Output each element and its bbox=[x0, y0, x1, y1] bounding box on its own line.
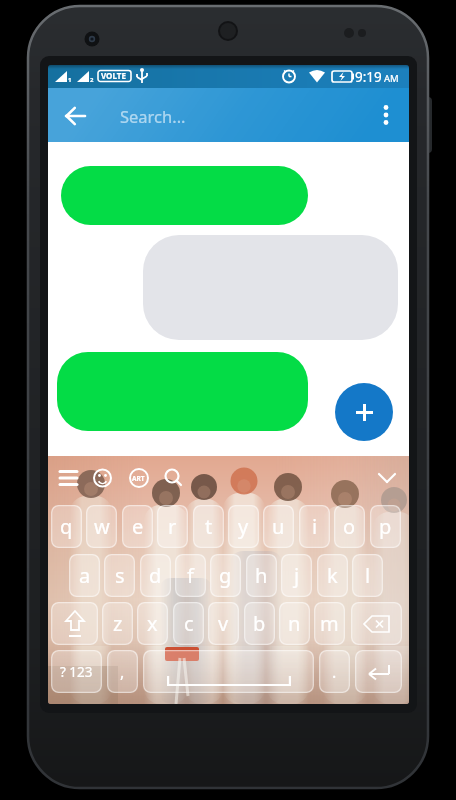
staticText: VOLTE bbox=[101, 70, 126, 81]
button[interactable]: o bbox=[334, 505, 365, 548]
button[interactable] bbox=[351, 602, 402, 645]
staticText: ? 123 bbox=[60, 663, 93, 681]
button[interactable]: h bbox=[246, 554, 277, 597]
button[interactable]: e bbox=[122, 505, 153, 548]
button[interactable]: t bbox=[193, 505, 224, 548]
staticText: f bbox=[187, 562, 194, 589]
staticText: 9:19 bbox=[355, 68, 382, 86]
button[interactable] bbox=[158, 462, 188, 494]
staticText: d bbox=[149, 562, 162, 589]
button[interactable] bbox=[370, 99, 402, 131]
button[interactable]: c bbox=[173, 602, 204, 645]
button[interactable] bbox=[335, 383, 393, 441]
staticText: . bbox=[332, 661, 337, 683]
button[interactable]: d bbox=[140, 554, 171, 597]
staticText: x bbox=[147, 610, 158, 637]
staticText: r bbox=[168, 513, 177, 540]
button[interactable]: w bbox=[86, 505, 117, 548]
staticText: g bbox=[219, 562, 232, 589]
staticText: l bbox=[365, 562, 371, 589]
button[interactable]: u bbox=[263, 505, 294, 548]
button[interactable] bbox=[88, 462, 117, 494]
staticText: 1 bbox=[68, 76, 72, 84]
button[interactable]: x bbox=[137, 602, 168, 645]
staticText: , bbox=[120, 661, 125, 683]
staticText: p bbox=[379, 513, 392, 540]
button[interactable] bbox=[60, 100, 92, 132]
staticText: o bbox=[343, 513, 356, 540]
staticText: t bbox=[205, 513, 213, 540]
button[interactable]: z bbox=[102, 602, 133, 645]
button[interactable] bbox=[51, 602, 98, 645]
staticText: c bbox=[184, 610, 194, 637]
button[interactable]: ? 123 bbox=[51, 650, 102, 693]
button[interactable]: b bbox=[244, 602, 275, 645]
button[interactable]: , bbox=[107, 650, 138, 693]
button[interactable] bbox=[124, 462, 154, 494]
button[interactable] bbox=[56, 462, 84, 494]
staticText: y bbox=[238, 513, 249, 540]
staticText: a bbox=[79, 562, 91, 589]
staticText: m bbox=[320, 610, 339, 637]
button[interactable] bbox=[371, 462, 403, 494]
button[interactable]: a bbox=[69, 554, 100, 597]
staticText: h bbox=[255, 562, 268, 589]
staticText: s bbox=[115, 562, 125, 589]
button[interactable] bbox=[143, 650, 314, 693]
button[interactable]: y bbox=[228, 505, 259, 548]
staticText: u bbox=[272, 513, 285, 540]
button[interactable]: p bbox=[370, 505, 401, 548]
button[interactable] bbox=[61, 166, 308, 225]
button[interactable]: k bbox=[317, 554, 348, 597]
staticText: i bbox=[312, 513, 318, 540]
button[interactable]: g bbox=[210, 554, 241, 597]
button[interactable]: m bbox=[314, 602, 345, 645]
button[interactable]: f bbox=[175, 554, 206, 597]
button[interactable]: . bbox=[319, 650, 350, 693]
staticText: k bbox=[327, 562, 338, 589]
staticText: 2 bbox=[90, 76, 94, 84]
staticText: n bbox=[288, 610, 301, 637]
staticText: j bbox=[294, 562, 300, 589]
button[interactable] bbox=[355, 650, 402, 693]
button[interactable] bbox=[108, 94, 358, 136]
button[interactable]: r bbox=[157, 505, 188, 548]
staticText: q bbox=[60, 513, 73, 540]
button[interactable]: q bbox=[51, 505, 82, 548]
button[interactable]: i bbox=[299, 505, 330, 548]
staticText: Search... bbox=[120, 105, 186, 127]
button[interactable] bbox=[143, 235, 398, 340]
staticText: v bbox=[218, 610, 229, 637]
staticText: b bbox=[253, 610, 266, 637]
button[interactable]: s bbox=[104, 554, 135, 597]
button[interactable] bbox=[57, 352, 308, 431]
staticText: z bbox=[113, 610, 123, 637]
button[interactable]: v bbox=[208, 602, 239, 645]
button[interactable]: n bbox=[279, 602, 310, 645]
staticText: w bbox=[94, 513, 110, 540]
button[interactable]: j bbox=[281, 554, 312, 597]
staticText: ART bbox=[132, 474, 145, 483]
staticText: e bbox=[132, 513, 144, 540]
staticText: AM bbox=[384, 72, 399, 85]
button[interactable]: l bbox=[352, 554, 383, 597]
